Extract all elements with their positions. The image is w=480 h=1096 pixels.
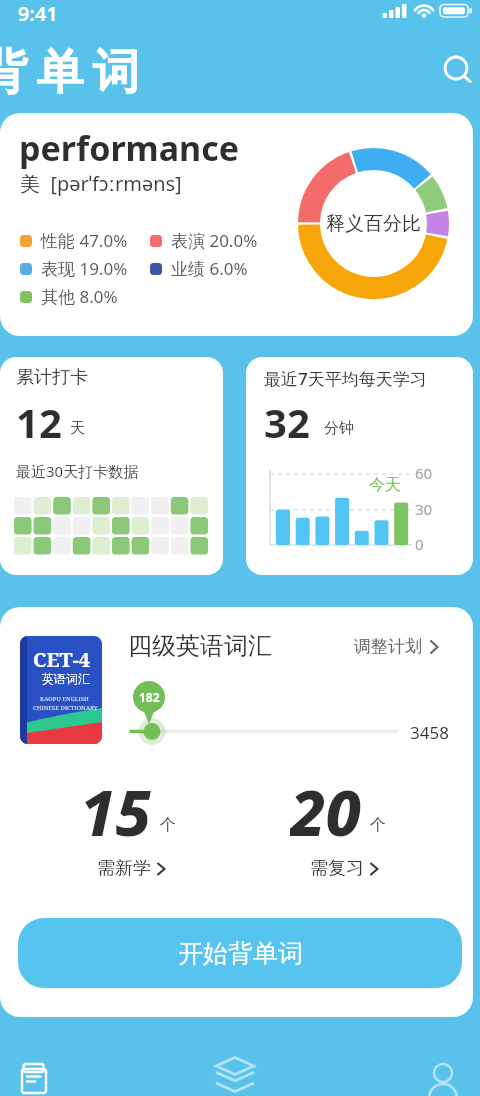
button[interactable]: 调整计划 [354,636,439,657]
button[interactable] [436,48,478,90]
staticText: 天 [70,419,85,438]
staticText: 15 [80,769,152,849]
button[interactable]: 最近7天平均每天学习 [246,357,473,575]
staticText: 需新学 [97,857,151,880]
staticText: 最近30天打卡数据 [16,461,139,481]
staticText: 四级英语词汇 [128,631,272,661]
staticText: 调整计划 [354,636,422,657]
staticText: 9:41 [18,0,58,27]
staticText: 20 [290,769,362,849]
staticText: 182 [139,689,160,705]
button[interactable]: performance [0,113,473,336]
staticText: 3458 [410,721,449,744]
staticText: 背单词 [0,43,144,102]
staticText: 业绩 6.0% [171,257,248,280]
staticText: 12 [16,395,62,449]
button[interactable]: 需新学 [51,855,211,881]
staticText: 需复习 [310,857,364,880]
button[interactable] [213,1054,257,1096]
staticText: 累计打卡 [16,366,88,389]
staticText: 释义百分比 [326,212,421,236]
button[interactable]: 累计打卡 [0,357,223,575]
staticText: 表现 19.0% [41,257,128,280]
button[interactable] [14,1056,58,1096]
staticText: 性能 47.0% [41,229,128,252]
staticText: 表演 20.0% [171,229,258,252]
staticText: 0 [415,534,424,554]
staticText: 英语词汇 [42,671,90,686]
button[interactable] [420,1058,464,1096]
staticText: 60 [415,463,433,483]
staticText: 美 [pərˈfɔːrməns] [20,170,182,197]
staticText: 其他 8.0% [41,285,118,308]
staticText: 个 [370,815,386,835]
button[interactable]: 开始背单词 [18,918,462,988]
staticText: 今天 [369,475,401,495]
staticText: KAOPU ENGLISH [40,695,89,703]
staticText: 32 [264,395,310,449]
staticText: performance [19,125,240,171]
staticText: 最近7天平均每天学习 [264,367,427,390]
staticText: 30 [415,499,433,519]
staticText: 个 [160,815,176,835]
staticText: CET-4 [33,646,90,673]
button[interactable]: 需复习 [264,855,424,881]
staticText: CHINESE DICTIONARY [33,704,98,712]
staticText: 开始背单词 [178,938,303,969]
staticText: 分钟 [324,419,354,438]
